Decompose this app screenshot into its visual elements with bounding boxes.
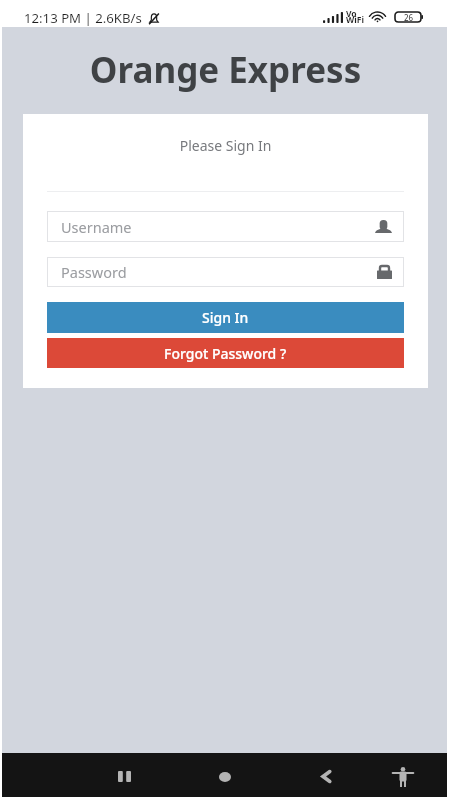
staticText: 26 xyxy=(404,12,414,22)
button[interactable]: Accessibility xyxy=(379,753,427,800)
staticText: Forgot Password ? xyxy=(164,344,287,363)
staticText: Username xyxy=(61,217,132,237)
staticText: Orange Express xyxy=(0,46,451,94)
button[interactable]: Password xyxy=(47,257,404,287)
button[interactable]: Back xyxy=(302,753,350,800)
staticText: Vo xyxy=(346,8,357,20)
button[interactable]: Recent apps xyxy=(100,753,148,800)
staticText: Sign In xyxy=(202,308,249,327)
staticText: WiFi xyxy=(346,14,364,26)
button[interactable]: Sign In xyxy=(47,302,404,333)
button[interactable]: Username xyxy=(47,211,404,242)
staticText: 12:13 PM | 2.6KB/s xyxy=(24,9,142,27)
button[interactable]: Home xyxy=(201,753,249,800)
staticText: Please Sign In xyxy=(23,136,428,155)
staticText: Password xyxy=(61,262,127,282)
button[interactable]: Forgot Password ? xyxy=(47,338,404,368)
